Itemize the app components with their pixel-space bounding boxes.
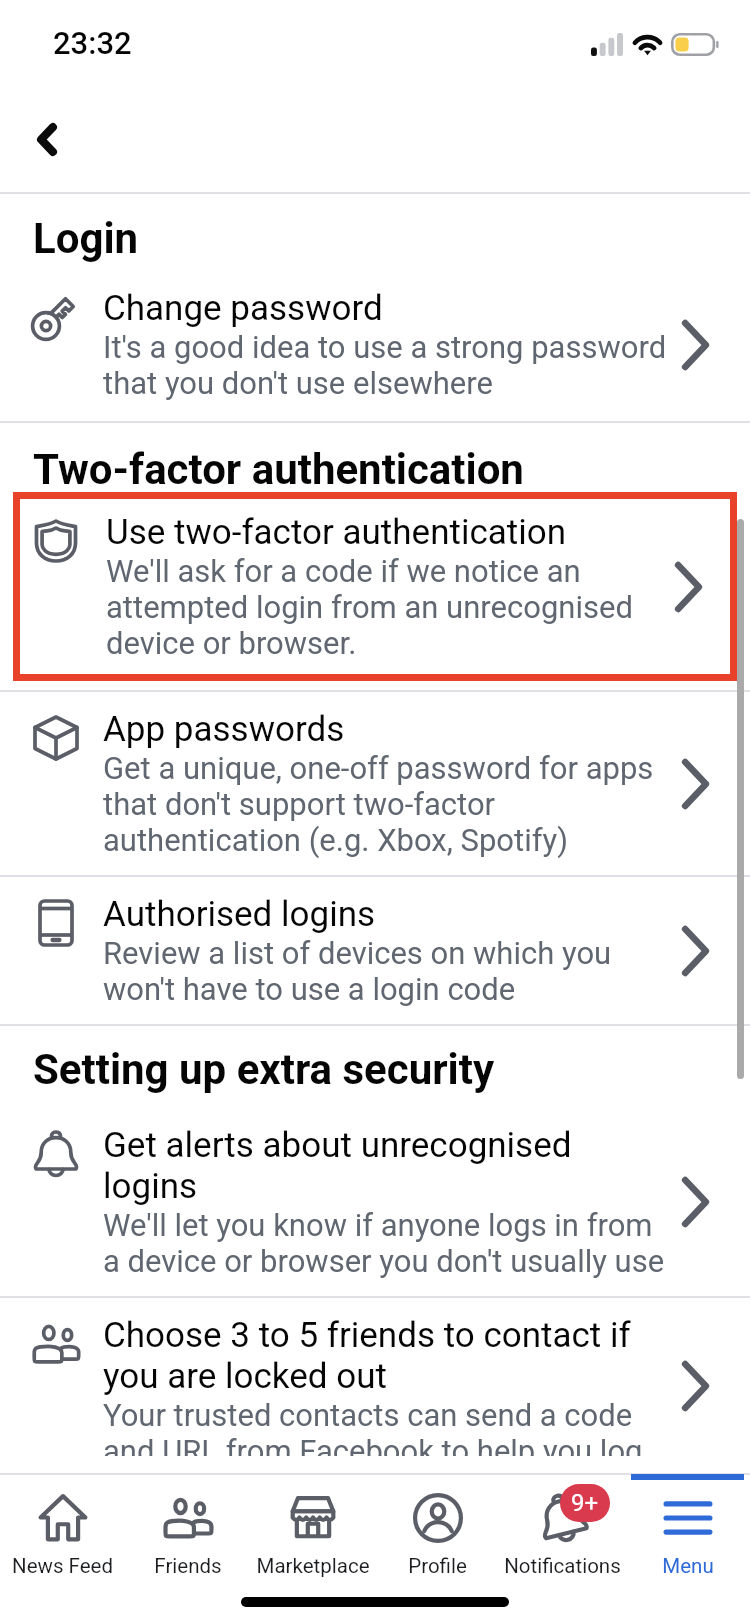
staticText: We'll ask for a code if we notice an att… [106,553,661,661]
staticText: Menu [662,1554,714,1578]
staticText: News Feed [12,1554,113,1578]
button[interactable]: Marketplace [250,1479,375,1578]
button[interactable]: Profile [375,1479,500,1578]
button[interactable]: 9+ [500,1479,625,1578]
staticText: Login [33,214,139,263]
button[interactable]: Choose 3 to 5 friends to contact if you … [0,1298,750,1473]
staticText: It's a good idea to use a strong passwor… [103,329,668,401]
staticText: Choose 3 to 5 friends to contact if you … [103,1315,668,1397]
button[interactable]: Get alerts about unrecognised logins [0,1108,750,1296]
button[interactable]: Menu [625,1479,750,1578]
staticText: Marketplace [256,1554,370,1578]
button[interactable]: Change password [0,271,750,421]
staticText: 9+ [571,1489,599,1517]
staticText: Friends [154,1554,222,1578]
button[interactable]: Back [9,101,85,177]
staticText: Your trusted contacts can send a code an… [103,1397,668,1456]
button[interactable]: Friends [125,1479,250,1578]
staticText: Authorised logins [103,894,376,935]
staticText: Profile [408,1554,467,1578]
button[interactable]: Authorised logins [0,877,750,1024]
staticText: Setting up extra security [33,1045,495,1094]
button[interactable]: Use two-factor authentication [20,499,730,674]
staticText: Use two-factor authentication [106,512,567,553]
staticText: Change password [103,288,383,329]
button[interactable]: App passwords [0,692,750,875]
staticText: App passwords [103,709,345,750]
button[interactable]: News Feed [0,1479,125,1578]
staticText: Get a unique, one-off password for apps … [103,750,668,858]
staticText: Notifications [504,1554,621,1578]
staticText: Two-factor authentication [33,445,524,494]
staticText: Review a list of devices on which you wo… [103,935,668,1007]
staticText: We'll let you know if anyone logs in fro… [103,1207,668,1279]
staticText: Get alerts about unrecognised logins [103,1125,668,1207]
staticText: 23:32 [53,25,132,61]
